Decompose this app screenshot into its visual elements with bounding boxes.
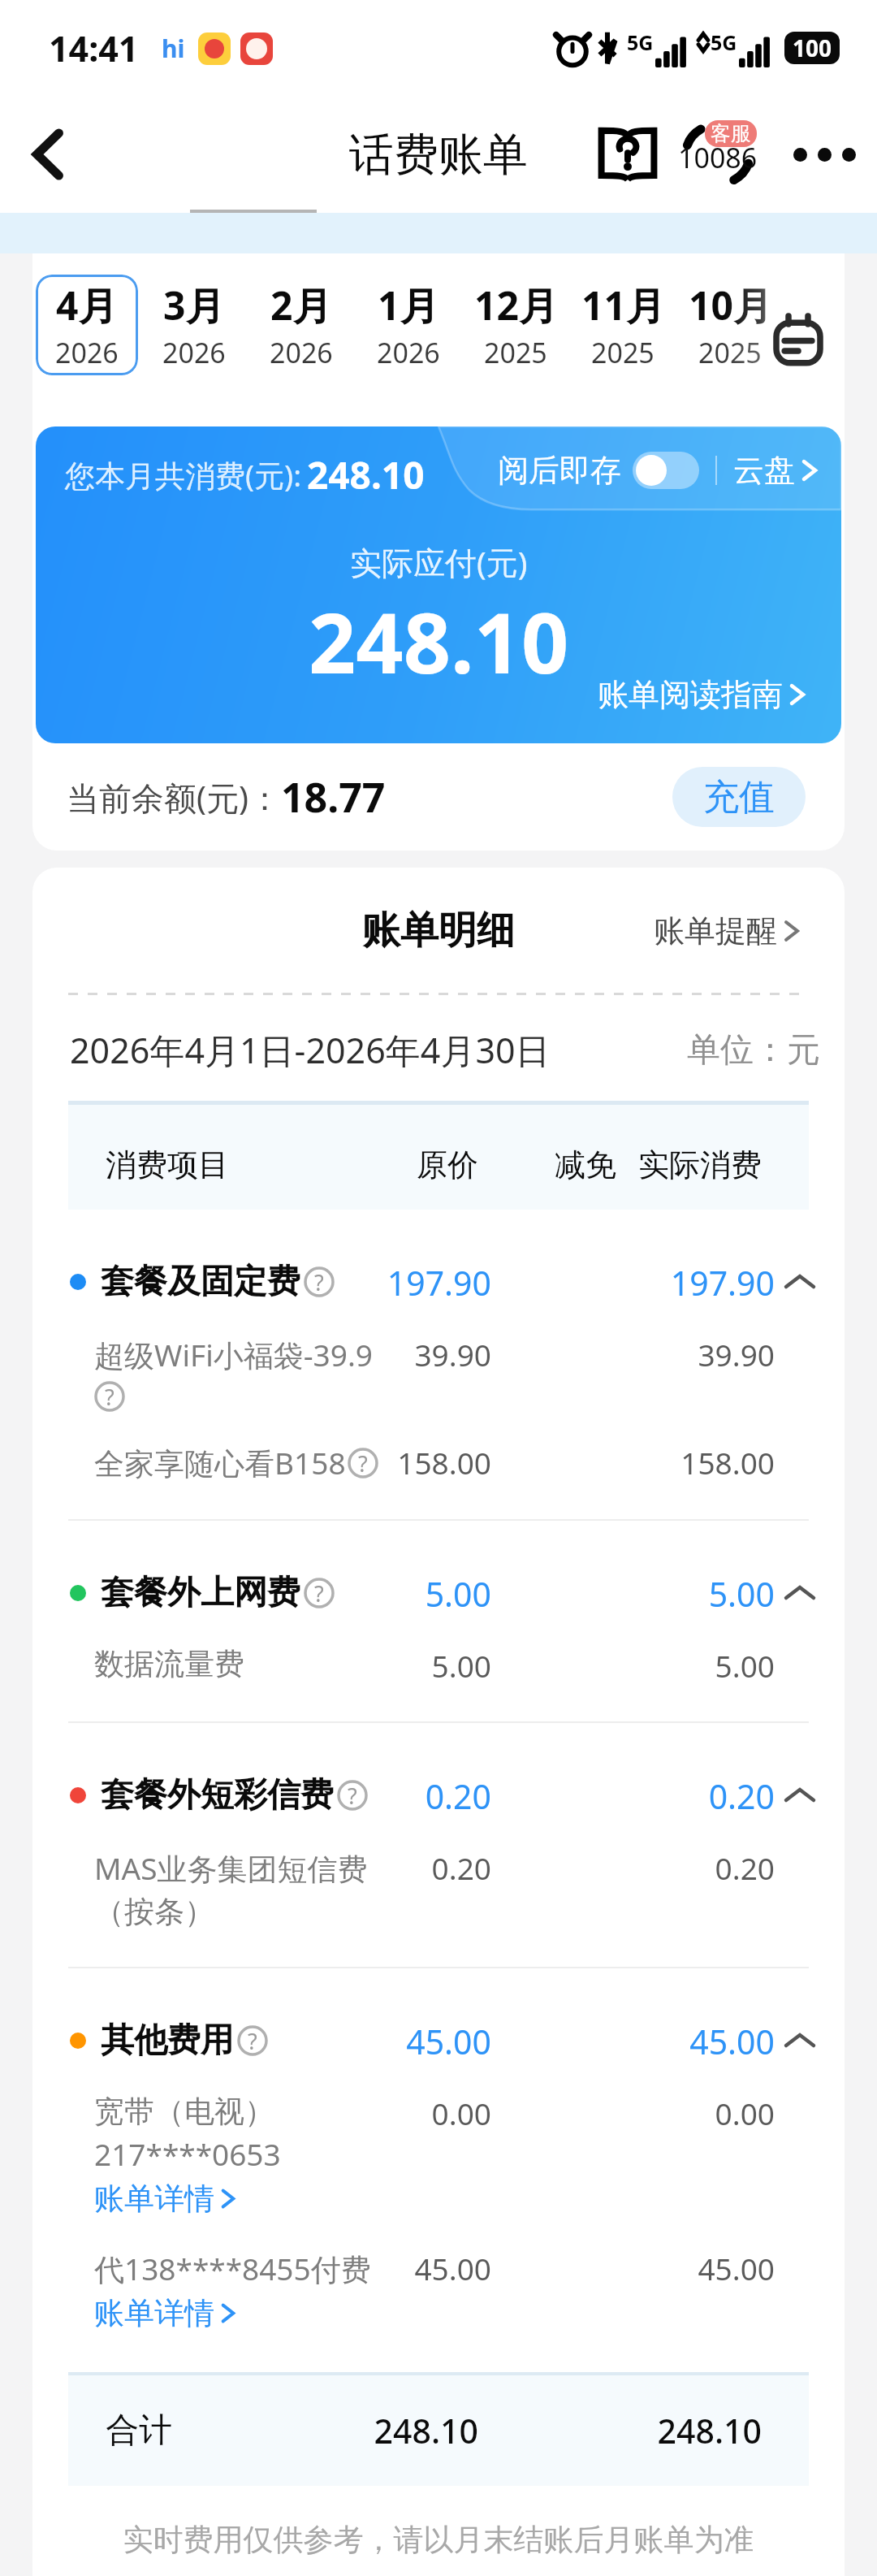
staticText: 原价	[292, 1145, 478, 1184]
staticText: ?	[358, 1448, 368, 1478]
staticText: 0.20	[629, 1773, 775, 1817]
staticText: 1月	[378, 279, 439, 332]
button[interactable]: 套餐及固定费	[55, 1260, 822, 1304]
staticText: 197.90	[629, 1260, 775, 1304]
staticText: 10月	[689, 279, 772, 332]
button[interactable]: 账单阅读指南	[598, 675, 806, 714]
staticText: 12月	[474, 279, 558, 332]
button[interactable]: 11月	[572, 275, 674, 375]
staticText: 充值	[703, 775, 775, 820]
staticText: 100	[793, 32, 832, 63]
button[interactable]: 账单提醒	[654, 911, 800, 950]
button[interactable]: 其他费用	[55, 2019, 822, 2063]
button[interactable]: 账单详情	[94, 2294, 235, 2332]
staticText: 5.00	[305, 1571, 491, 1615]
staticText: 消费项目	[106, 1145, 229, 1184]
staticText: 5.00	[629, 1571, 775, 1615]
button[interactable]: 套餐外上网费	[55, 1571, 822, 1615]
staticText: 4月	[56, 279, 118, 332]
staticText: 套餐外短彩信费	[101, 1774, 334, 1816]
staticText: 实时费用仅供参考，请以月末结账后月账单为准	[32, 2521, 845, 2559]
staticText: 5.00	[305, 1645, 491, 1686]
staticText: MAS业务集团短信费 （按条）	[94, 1847, 368, 1931]
button[interactable]: More options	[780, 96, 869, 213]
staticText: 数据流量费	[94, 1645, 244, 1683]
staticText: 158.00	[629, 1442, 775, 1483]
staticText: 14:41	[49, 24, 139, 72]
staticText: ?	[248, 2026, 257, 2056]
staticText: 2月	[270, 279, 332, 332]
button[interactable]: Back	[13, 119, 83, 189]
staticText: 实际消费	[616, 1145, 762, 1184]
button[interactable]: 2月	[250, 275, 352, 375]
button[interactable]: 12月	[464, 275, 567, 375]
staticText: 0.00	[305, 2093, 491, 2133]
button[interactable]: 套餐外短彩信费	[55, 1773, 822, 1817]
staticText: 2026	[377, 334, 440, 371]
staticText: 合计	[106, 2409, 172, 2452]
staticText: 39.90	[629, 1334, 775, 1375]
staticText: 45.00	[629, 2248, 775, 2288]
staticText: 2026	[55, 334, 119, 371]
staticText: 账单详情	[94, 2294, 214, 2332]
staticText: 197.90	[305, 1260, 491, 1304]
staticText: 248.10	[309, 585, 569, 698]
staticText: 其他费用	[101, 2020, 234, 2062]
staticText: 账单提醒	[654, 911, 777, 950]
button[interactable]: 云盘	[733, 451, 818, 490]
staticText: 2026年4月1日-2026年4月30日	[70, 1026, 551, 1074]
staticText: 10086	[678, 139, 758, 176]
staticText: 0.20	[305, 1847, 491, 1888]
staticText: 当前余额(元)：	[67, 775, 281, 820]
staticText: 0.00	[629, 2093, 775, 2133]
staticText: 39.90	[305, 1334, 491, 1375]
staticText: 5G	[627, 28, 654, 56]
button[interactable]: Help	[583, 110, 672, 199]
staticText: 2026	[270, 334, 333, 371]
staticText: 云盘	[733, 451, 795, 490]
staticText: 代138****8455付费	[94, 2248, 371, 2289]
staticText: 话费账单	[349, 127, 528, 183]
staticText: 单位：元	[687, 1029, 820, 1072]
staticText: hi	[162, 32, 185, 65]
staticText: 超级WiFi小福袋-39.9	[94, 1334, 374, 1375]
button[interactable]: Choose month	[763, 304, 833, 374]
staticText: ?	[314, 1578, 324, 1608]
staticText: 减免	[478, 1145, 616, 1184]
staticText: 账单阅读指南	[598, 675, 783, 714]
button[interactable]: 3月	[143, 275, 245, 375]
staticText: 0.20	[629, 1847, 775, 1888]
staticText: 宽带（电视） 217****0653	[94, 2093, 281, 2175]
button[interactable]: 1月	[357, 275, 460, 375]
button[interactable]: 4月	[36, 275, 138, 375]
staticText: 2026	[162, 334, 226, 371]
button[interactable]: Customer service 10086	[676, 112, 760, 197]
staticText: 5.00	[629, 1645, 775, 1686]
button[interactable]: 账单详情	[94, 2180, 235, 2218]
staticText: 您本月共消费(元):	[65, 454, 302, 496]
button[interactable]: 阅后即存	[498, 451, 699, 490]
staticText: ?	[348, 1781, 357, 1811]
staticText: 阅后即存	[498, 451, 621, 490]
staticText: 248.10	[616, 2408, 762, 2453]
staticText: 5G	[711, 28, 737, 56]
staticText: 45.00	[629, 2019, 775, 2063]
staticText: ?	[105, 1382, 114, 1412]
staticText: 2025	[484, 334, 547, 371]
staticText: 2025	[591, 334, 655, 371]
staticText: 套餐及固定费	[101, 1261, 300, 1303]
staticText: 账单详情	[94, 2180, 214, 2218]
staticText: 套餐外上网费	[101, 1572, 300, 1614]
staticText: 2025	[698, 334, 762, 371]
staticText: 全家享随心看B158	[94, 1442, 346, 1483]
staticText: 248.10	[307, 449, 425, 500]
staticText: 158.00	[305, 1442, 491, 1483]
staticText: 248.10	[292, 2408, 478, 2453]
button[interactable]: 充值	[672, 767, 806, 827]
button[interactable]: 10月	[679, 275, 781, 375]
staticText: 客服	[711, 121, 751, 146]
staticText: 45.00	[305, 2019, 491, 2063]
staticText: 45.00	[305, 2248, 491, 2288]
staticText: 0.20	[305, 1773, 491, 1817]
staticText: 18.77	[281, 769, 386, 825]
